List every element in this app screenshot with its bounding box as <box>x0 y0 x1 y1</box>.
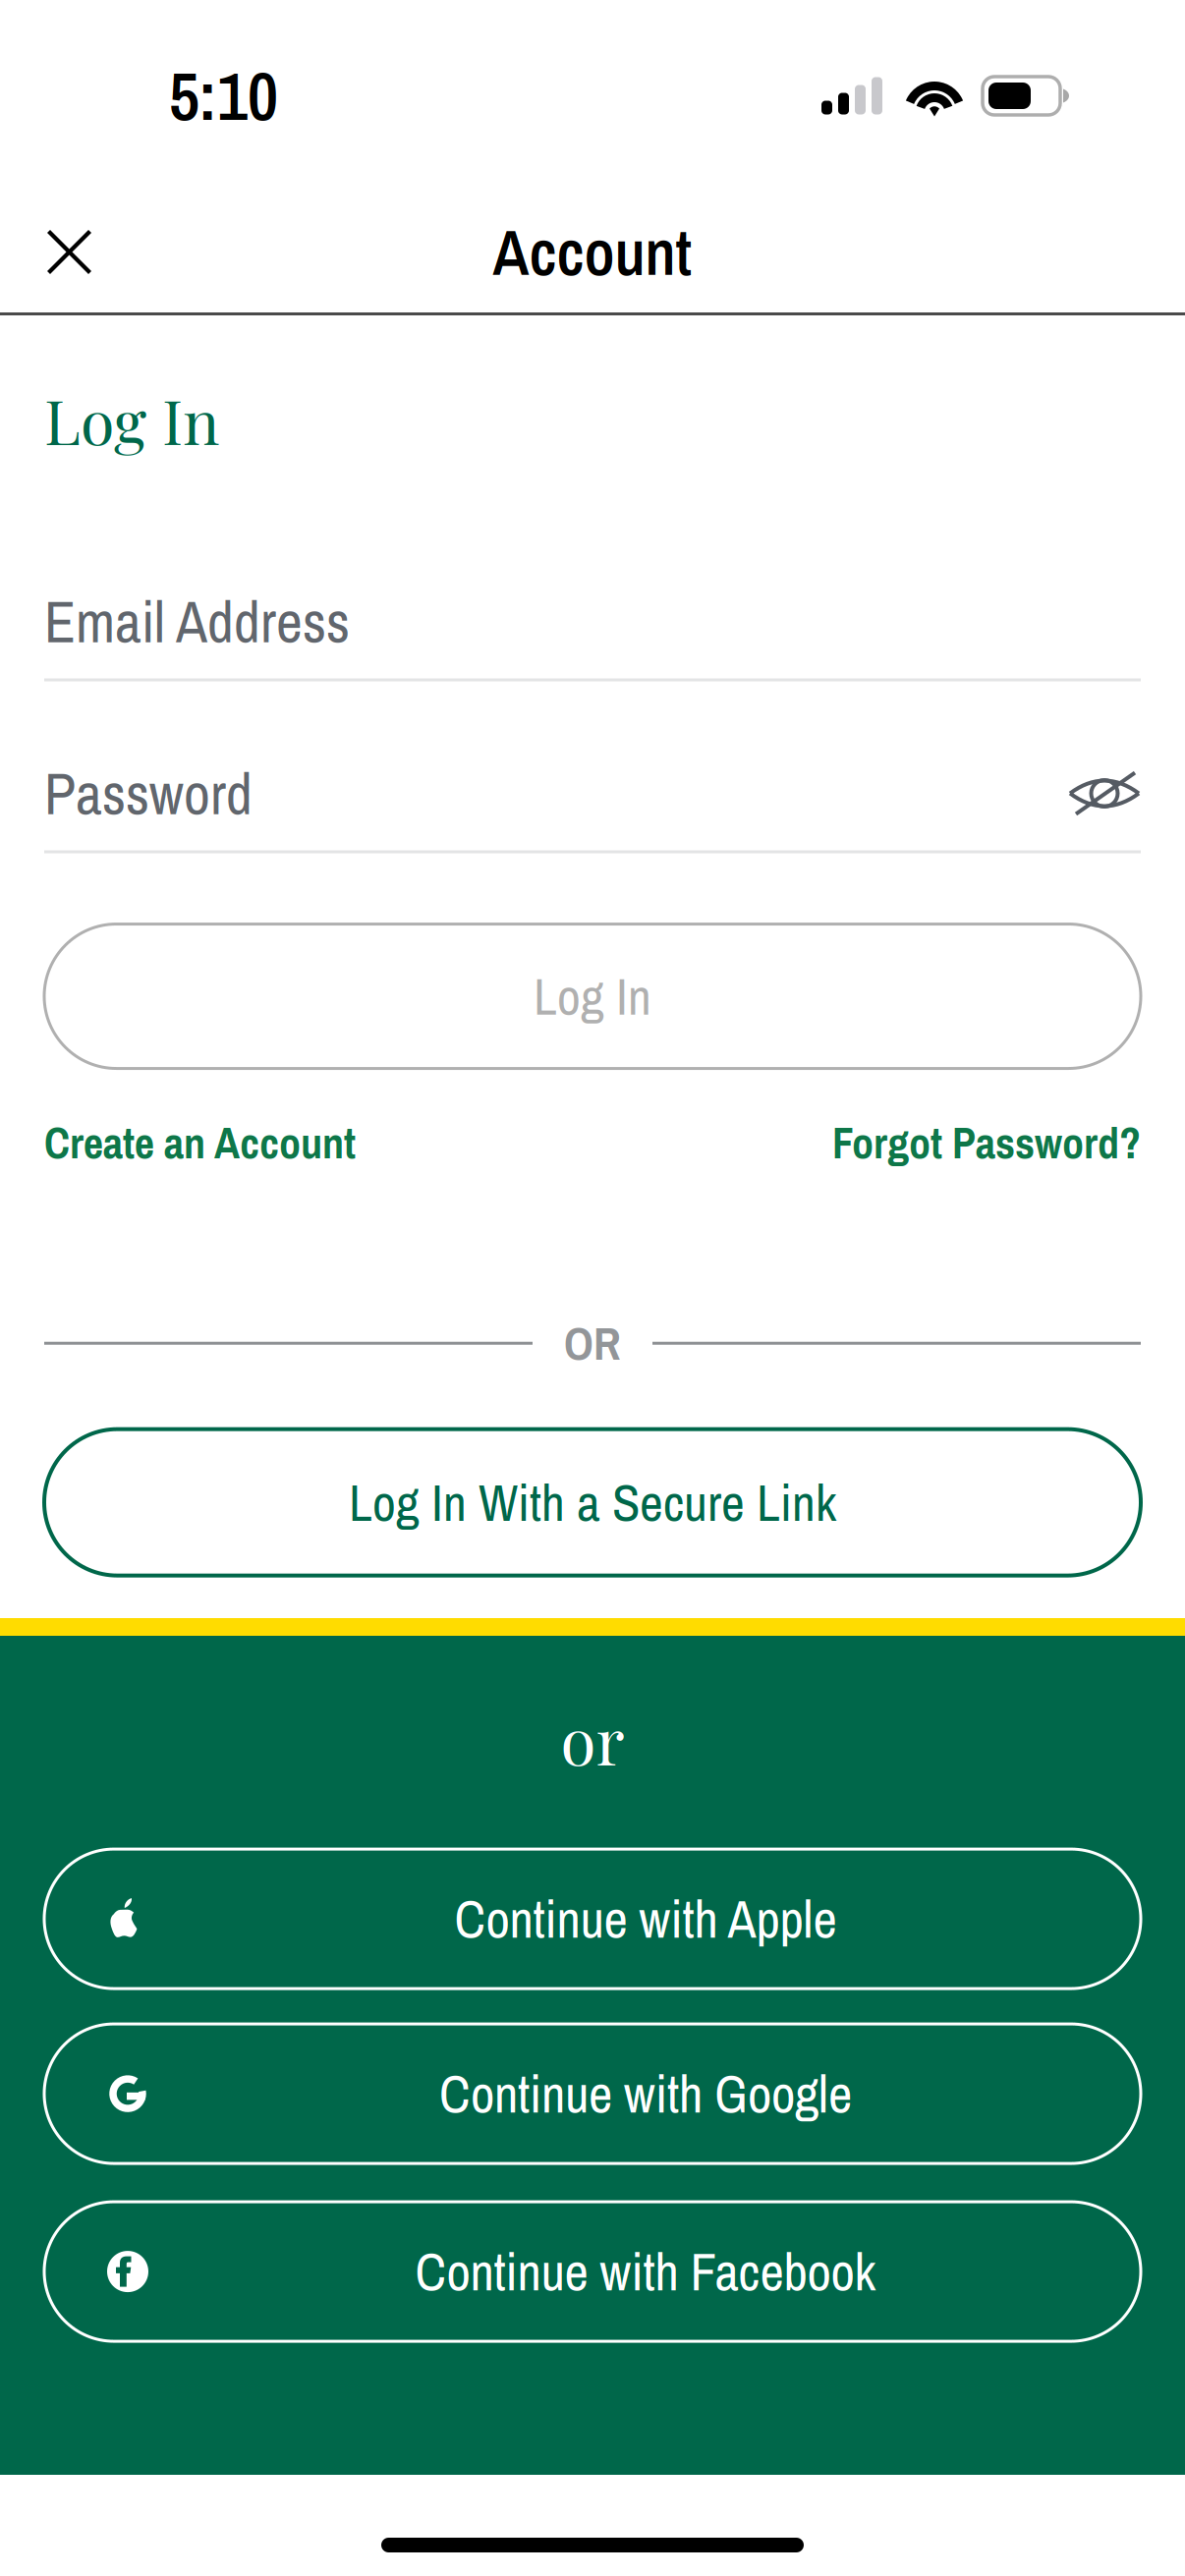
staticText: Continue with Facebook <box>415 2236 876 2307</box>
staticText: Log In <box>534 962 651 1031</box>
button[interactable]: Forgot Password? <box>832 1114 1141 1172</box>
button[interactable]: Create an Account <box>44 1114 356 1172</box>
button[interactable]: Log In With a Secure Link <box>44 1429 1141 1576</box>
staticText: Continue with Google <box>439 2058 852 2129</box>
staticText: Account <box>493 210 692 294</box>
button[interactable]: Continue with Google <box>44 2024 1141 2163</box>
button[interactable]: Continue with Apple <box>44 1849 1141 1989</box>
staticText: OR <box>564 1312 621 1374</box>
staticText: Email Address <box>44 583 350 660</box>
staticText: Log In With a Secure Link <box>349 1468 836 1537</box>
staticText: Forgot Password? <box>832 1114 1141 1172</box>
button[interactable]: Continue with Facebook <box>44 2202 1141 2341</box>
staticText: Password <box>44 755 253 832</box>
staticText: Continue with Apple <box>454 1884 837 1954</box>
staticText: 5:10 <box>169 51 278 141</box>
button[interactable]: Show password <box>1068 772 1141 815</box>
button[interactable]: Log In <box>44 924 1141 1068</box>
staticText: or <box>561 1696 624 1781</box>
staticText: Log In <box>44 378 219 460</box>
staticText: Create an Account <box>44 1114 356 1172</box>
button[interactable]: Close <box>0 198 127 306</box>
